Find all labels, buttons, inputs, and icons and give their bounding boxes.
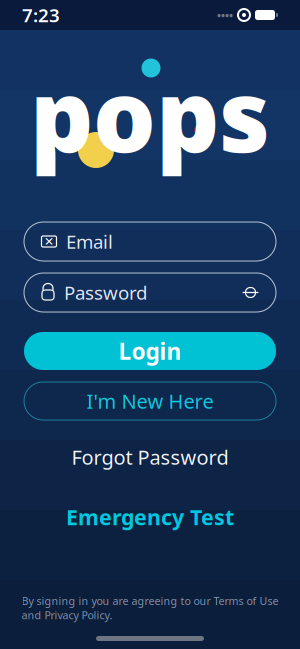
staticText: Emergency Test	[66, 503, 234, 531]
staticText: Email	[66, 229, 113, 254]
button[interactable]: Forgot Password	[24, 446, 276, 468]
button[interactable]: Login	[24, 332, 276, 370]
staticText: Forgot Password	[71, 444, 228, 470]
staticText: Login	[118, 336, 181, 366]
staticText: pops	[30, 48, 270, 179]
staticText: 7:23	[22, 3, 60, 27]
staticText: By signing in you are agreeing to our Te…	[21, 594, 278, 622]
staticText: ••••	[217, 8, 233, 22]
button[interactable]: ✕	[24, 222, 276, 261]
button[interactable]: Emergency Test	[24, 506, 276, 528]
staticText: ✕	[44, 235, 54, 248]
staticText: Password	[64, 280, 147, 305]
button[interactable]: Password	[24, 273, 276, 312]
button[interactable]: I'm New Here	[24, 382, 276, 420]
staticText: I'm New Here	[86, 388, 213, 414]
